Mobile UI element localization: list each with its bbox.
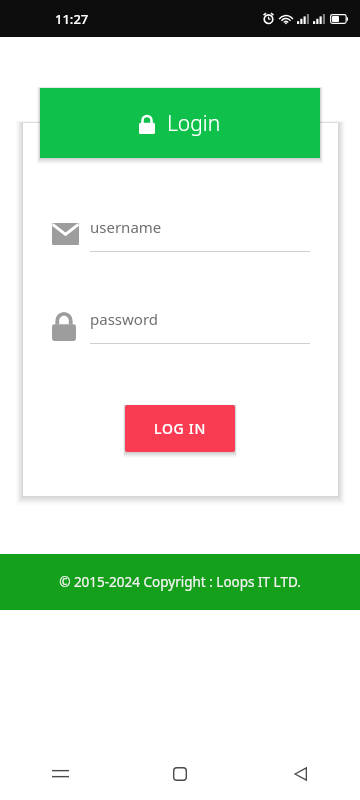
staticText: Login	[167, 109, 221, 138]
button[interactable]: © 2015-2024 Copyright : Loops IT LTD.	[0, 554, 360, 610]
staticText: LOG IN	[154, 419, 207, 438]
button[interactable]: username	[52, 210, 310, 258]
button[interactable]: Recent apps	[0, 748, 120, 800]
button[interactable]: Back	[240, 748, 360, 800]
staticText: password	[90, 309, 158, 329]
staticText: username	[90, 217, 162, 237]
button[interactable]: LOG IN	[125, 405, 235, 452]
staticText: 11:27	[55, 10, 89, 28]
button[interactable]: Login	[40, 88, 320, 158]
staticText: © 2015-2024 Copyright : Loops IT LTD.	[59, 573, 301, 591]
button[interactable]: Home	[120, 748, 240, 800]
button[interactable]: password	[52, 302, 310, 350]
